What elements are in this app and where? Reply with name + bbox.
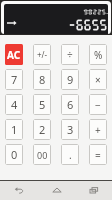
staticText: ÷	[67, 48, 73, 62]
button[interactable]: 3	[61, 119, 79, 140]
button[interactable]: 8	[33, 69, 51, 90]
staticText: 8	[39, 72, 46, 87]
staticText: AC	[7, 48, 21, 62]
staticText: −	[95, 98, 101, 112]
staticText: 0	[11, 147, 18, 162]
staticText: 6	[67, 97, 74, 112]
staticText: ×	[95, 73, 101, 87]
button[interactable]: 4	[5, 94, 23, 115]
button[interactable]: +	[89, 119, 107, 140]
button[interactable]: ÷	[61, 44, 79, 65]
button[interactable]: ×	[89, 69, 107, 90]
button[interactable]: Back	[0, 180, 38, 200]
staticText: %	[94, 48, 103, 62]
staticText: .	[69, 148, 72, 162]
button[interactable]: Home	[38, 180, 75, 200]
staticText: 1	[11, 122, 18, 137]
staticText: 7	[11, 72, 18, 87]
button[interactable]: 0	[5, 144, 23, 165]
staticText: 00	[37, 149, 48, 161]
button[interactable]: %	[89, 44, 107, 65]
staticText: =	[95, 148, 101, 162]
staticText: +/-	[37, 49, 48, 60]
button[interactable]: +/-	[33, 44, 51, 65]
button[interactable]: 5	[33, 94, 51, 115]
button[interactable]: 7	[5, 69, 23, 90]
staticText: 3	[67, 122, 74, 137]
button[interactable]: =	[89, 144, 107, 165]
button[interactable]: Recent apps	[75, 180, 112, 200]
button[interactable]: AC	[5, 44, 23, 65]
button[interactable]: −	[89, 94, 107, 115]
staticText: +	[95, 123, 101, 137]
button[interactable]: 2	[33, 119, 51, 140]
staticText: 2	[39, 122, 46, 137]
button[interactable]: 6	[61, 94, 79, 115]
button[interactable]: 00	[33, 144, 51, 165]
staticText: 4	[11, 97, 18, 112]
staticText: 5	[39, 97, 46, 112]
button[interactable]: 1	[5, 119, 23, 140]
staticText: 9	[67, 72, 74, 87]
button[interactable]: 9	[61, 69, 79, 90]
button[interactable]: .	[61, 144, 79, 165]
